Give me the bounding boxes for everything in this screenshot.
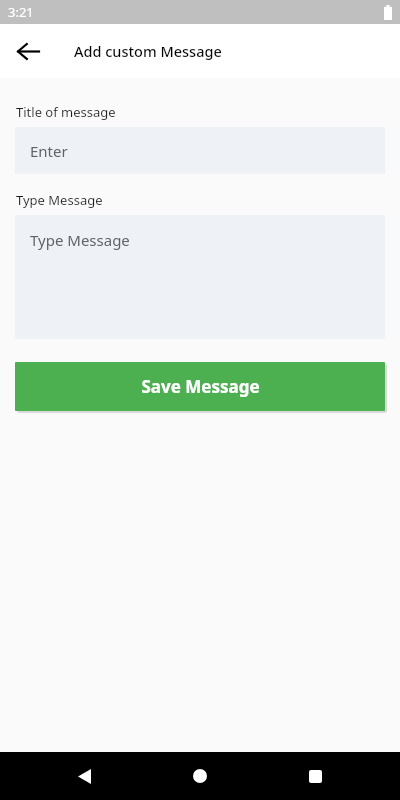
staticText: Type Message xyxy=(16,191,103,209)
staticText: Type Message xyxy=(30,230,130,250)
button[interactable]: Type Message xyxy=(15,215,385,339)
button[interactable]: Home xyxy=(180,756,220,796)
button[interactable]: Back xyxy=(64,756,104,796)
staticText: Title of message xyxy=(16,103,116,121)
button[interactable]: Enter xyxy=(15,127,385,174)
staticText: Save Message xyxy=(141,375,260,398)
button[interactable]: Save Message xyxy=(15,362,385,411)
button[interactable]: Back xyxy=(8,31,48,71)
staticText: Enter xyxy=(30,141,68,161)
staticText: 3:21 xyxy=(8,3,34,21)
button[interactable]: Recent apps xyxy=(295,756,335,796)
staticText: Add custom Message xyxy=(74,41,222,61)
